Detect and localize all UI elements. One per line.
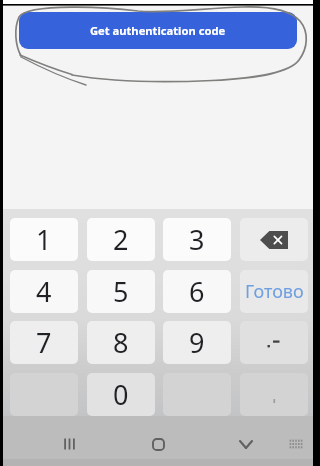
- staticText: Get authentication code: [90, 23, 226, 38]
- staticText: 9: [189, 324, 205, 361]
- button[interactable]: Get authentication code: [19, 12, 297, 49]
- button[interactable]: 8: [87, 321, 155, 364]
- staticText: 2: [113, 221, 129, 258]
- button[interactable]: Punctuation: [240, 321, 308, 364]
- staticText: 0: [113, 376, 129, 413]
- button[interactable]: 1: [10, 218, 78, 261]
- button[interactable]: 5: [87, 270, 155, 313]
- button[interactable]: 2: [87, 218, 155, 261]
- button[interactable]: Recents: [47, 421, 91, 466]
- button[interactable]: 9: [163, 321, 231, 364]
- button[interactable]: Home: [136, 421, 180, 466]
- staticText: 7: [36, 324, 52, 361]
- staticText: 6: [189, 273, 205, 310]
- staticText: 8: [113, 324, 129, 361]
- staticText: 3: [189, 221, 205, 258]
- staticText: 4: [36, 273, 52, 310]
- staticText: 5: [113, 273, 129, 310]
- button[interactable]: 0: [87, 373, 155, 416]
- button[interactable]: 4: [10, 270, 78, 313]
- staticText: 1: [36, 221, 52, 258]
- button[interactable]: 3: [163, 218, 231, 261]
- staticText: Готово: [245, 279, 304, 304]
- button[interactable]: Готово: [240, 270, 308, 313]
- button[interactable]: Switch keyboard: [274, 421, 318, 466]
- button[interactable]: 6: [163, 270, 231, 313]
- button[interactable]: Backspace: [240, 218, 308, 261]
- button[interactable]: 7: [10, 321, 78, 364]
- button[interactable]: Hide keyboard: [224, 421, 268, 466]
